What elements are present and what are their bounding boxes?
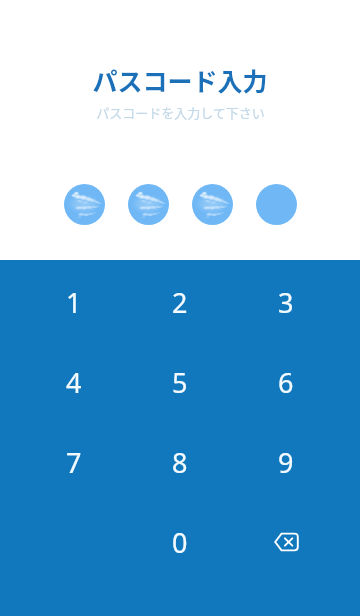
button[interactable]: 0 [127,502,233,582]
staticText: パスコード入力 [92,62,268,98]
staticText: 9 [278,444,294,481]
staticText: 3 [278,284,294,321]
button[interactable]: 5 [127,342,233,422]
staticText: 5 [172,364,188,401]
staticText: 7 [66,444,82,481]
button[interactable]: 4 [21,342,127,422]
staticText: 2 [172,284,188,321]
staticText: パスコードを入力して下さい [96,103,265,122]
other: Delete [274,532,299,552]
staticText: 0 [172,524,188,561]
staticText: 6 [278,364,294,401]
staticText: 4 [66,364,82,401]
button[interactable]: 1 [21,262,127,342]
button[interactable]: 7 [21,422,127,502]
staticText: 1 [66,284,82,321]
staticText: 8 [172,444,188,481]
button[interactable]: 8 [127,422,233,502]
button[interactable]: 3 [233,262,339,342]
button[interactable]: Delete [233,502,339,582]
button[interactable]: 6 [233,342,339,422]
button[interactable]: 2 [127,262,233,342]
button[interactable]: 9 [233,422,339,502]
